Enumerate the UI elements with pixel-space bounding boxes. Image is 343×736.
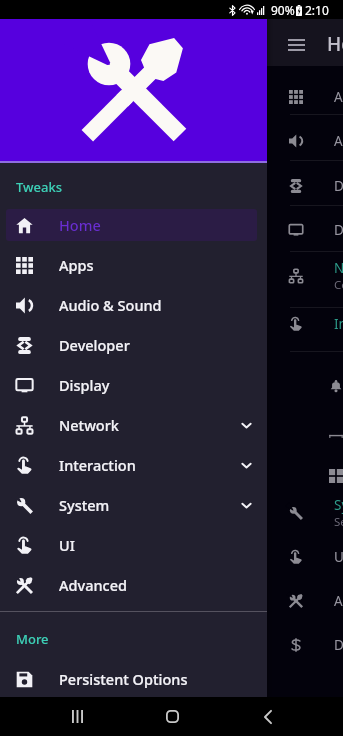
button[interactable]: Back xyxy=(248,697,288,736)
staticText: System xyxy=(334,496,343,514)
button[interactable]: Notifications xyxy=(0,366,343,406)
staticText: 90% xyxy=(271,2,295,18)
staticText: Audio & Sound xyxy=(334,132,343,150)
staticText: Apps xyxy=(59,255,94,275)
button[interactable]: Network xyxy=(6,409,257,441)
staticText: Settings xyxy=(334,514,343,530)
staticText: Developer xyxy=(334,177,343,195)
button[interactable]: Interaction xyxy=(0,304,343,344)
staticText: Home xyxy=(327,31,343,57)
staticText: UI xyxy=(59,535,75,555)
button[interactable]: Advanced xyxy=(6,569,257,601)
button[interactable]: Developer xyxy=(0,166,343,206)
staticText: Connectivity xyxy=(334,277,343,293)
button[interactable]: Display xyxy=(6,369,257,401)
button[interactable]: Interaction xyxy=(6,449,257,481)
button[interactable]: App logo xyxy=(0,19,267,163)
staticText: Interaction xyxy=(59,455,136,475)
staticText: Display xyxy=(59,375,110,395)
staticText: System xyxy=(59,495,110,515)
button[interactable]: Recent apps xyxy=(57,697,97,736)
staticText: Apps xyxy=(334,88,343,106)
button[interactable]: Audio & Sound xyxy=(6,289,257,321)
staticText: Audio & Sound xyxy=(59,295,162,315)
staticText: Interaction xyxy=(334,315,343,333)
staticText: Network xyxy=(59,415,119,435)
button[interactable]: Developer xyxy=(6,329,257,361)
staticText: Home xyxy=(59,215,101,235)
button[interactable]: Home xyxy=(6,209,257,241)
button[interactable]: Network xyxy=(0,256,343,296)
staticText: UI xyxy=(334,548,343,566)
button[interactable]: Apps xyxy=(0,77,343,117)
button[interactable]: Persistent Options xyxy=(6,663,257,695)
button[interactable]: Audio & Sound xyxy=(0,121,343,161)
staticText: Developer xyxy=(59,335,130,355)
staticText: Donate xyxy=(334,636,343,654)
button[interactable]: Open navigation drawer xyxy=(276,23,316,63)
button[interactable]: Home xyxy=(152,697,192,736)
staticText: Advanced xyxy=(334,592,343,610)
button[interactable]: UI xyxy=(6,529,257,561)
button[interactable]: Advanced xyxy=(0,581,343,621)
button[interactable]: System xyxy=(6,489,257,521)
staticText: 2:10 xyxy=(305,2,329,18)
button[interactable]: UI xyxy=(0,537,343,577)
staticText: More xyxy=(16,630,49,648)
button[interactable]: Donate xyxy=(0,625,343,665)
button[interactable]: System xyxy=(0,493,343,533)
staticText: Advanced xyxy=(59,575,127,595)
button[interactable]: Quick Settings xyxy=(0,456,343,496)
staticText: Persistent Options xyxy=(59,669,188,689)
button[interactable]: Apps xyxy=(6,249,257,281)
staticText: Display xyxy=(334,221,343,239)
staticText: Network xyxy=(334,259,343,277)
button[interactable]: Display xyxy=(0,210,343,250)
staticText: Tweaks xyxy=(16,178,63,196)
button[interactable]: Status Bar xyxy=(0,416,343,456)
